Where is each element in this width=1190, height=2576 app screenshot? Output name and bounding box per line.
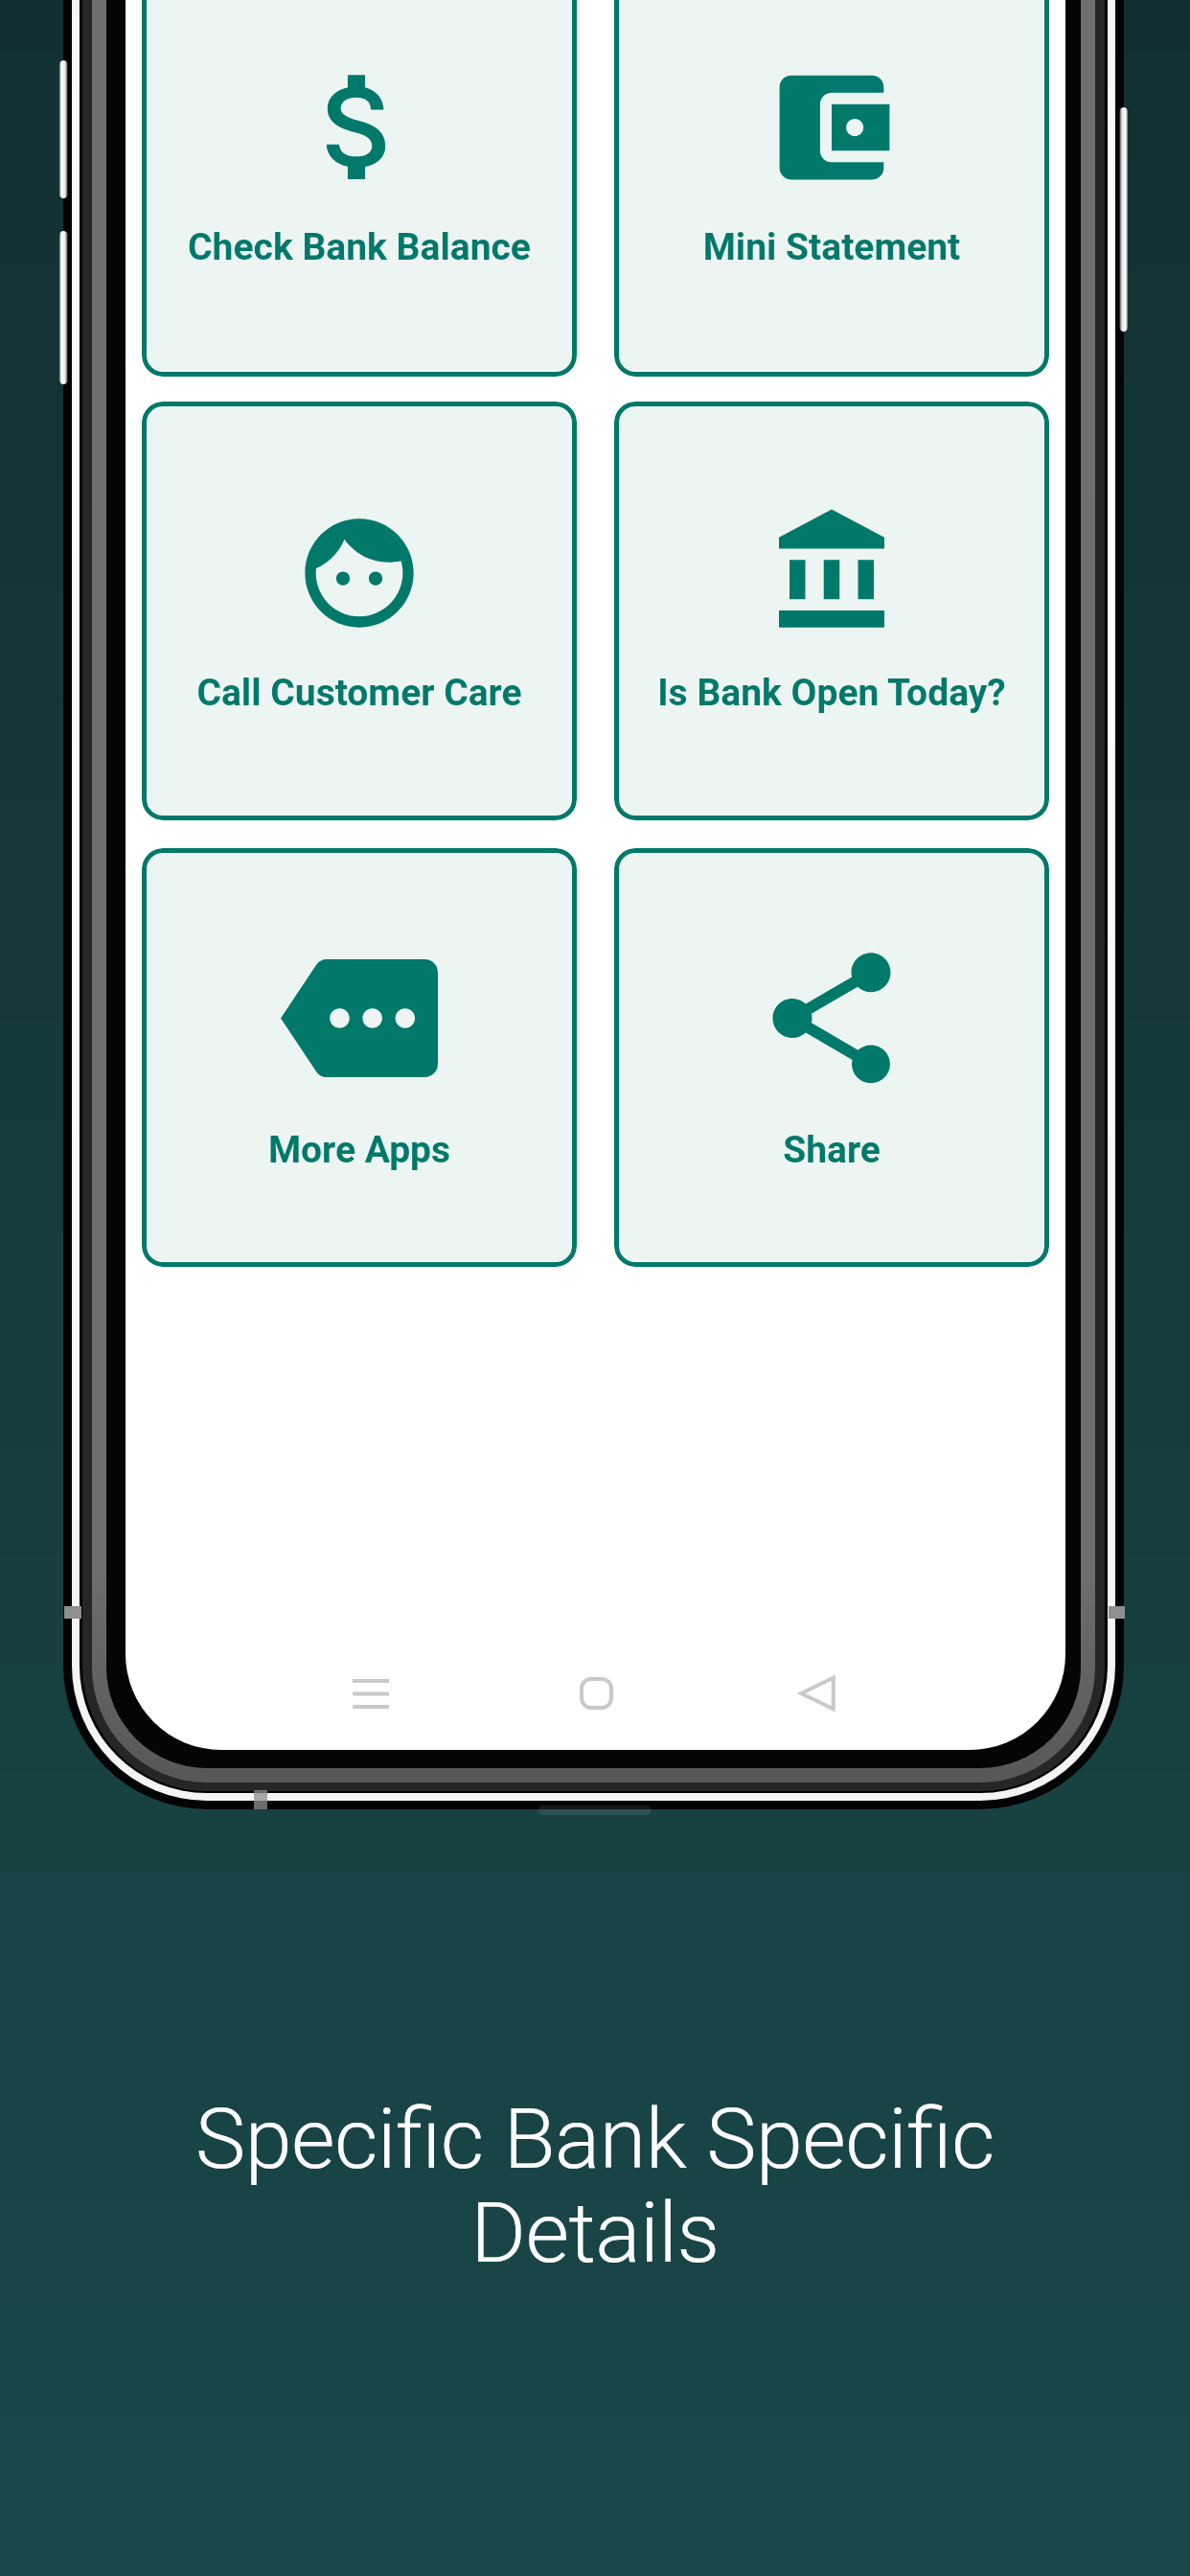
staticText: Check Bank Balance <box>142 225 577 269</box>
staticText: Is Bank Open Today? <box>614 671 1049 715</box>
button[interactable]: Call Customer Care <box>142 402 577 820</box>
button[interactable]: Check Bank Balance <box>142 0 577 377</box>
button[interactable]: Share <box>614 848 1049 1267</box>
button[interactable]: Menu <box>317 1640 424 1747</box>
staticText: Share <box>614 1128 1049 1172</box>
button[interactable]: Back <box>764 1640 871 1747</box>
button[interactable]: More Apps <box>142 848 577 1267</box>
staticText: Specific Bank Specific Details <box>125 2089 1065 2282</box>
button[interactable]: Mini Statement <box>614 0 1049 377</box>
staticText: Call Customer Care <box>142 671 577 715</box>
button[interactable]: Home <box>542 1640 650 1747</box>
button[interactable]: Is Bank Open Today? <box>614 402 1049 820</box>
staticText: More Apps <box>142 1128 577 1172</box>
staticText: Mini Statement <box>614 225 1049 269</box>
